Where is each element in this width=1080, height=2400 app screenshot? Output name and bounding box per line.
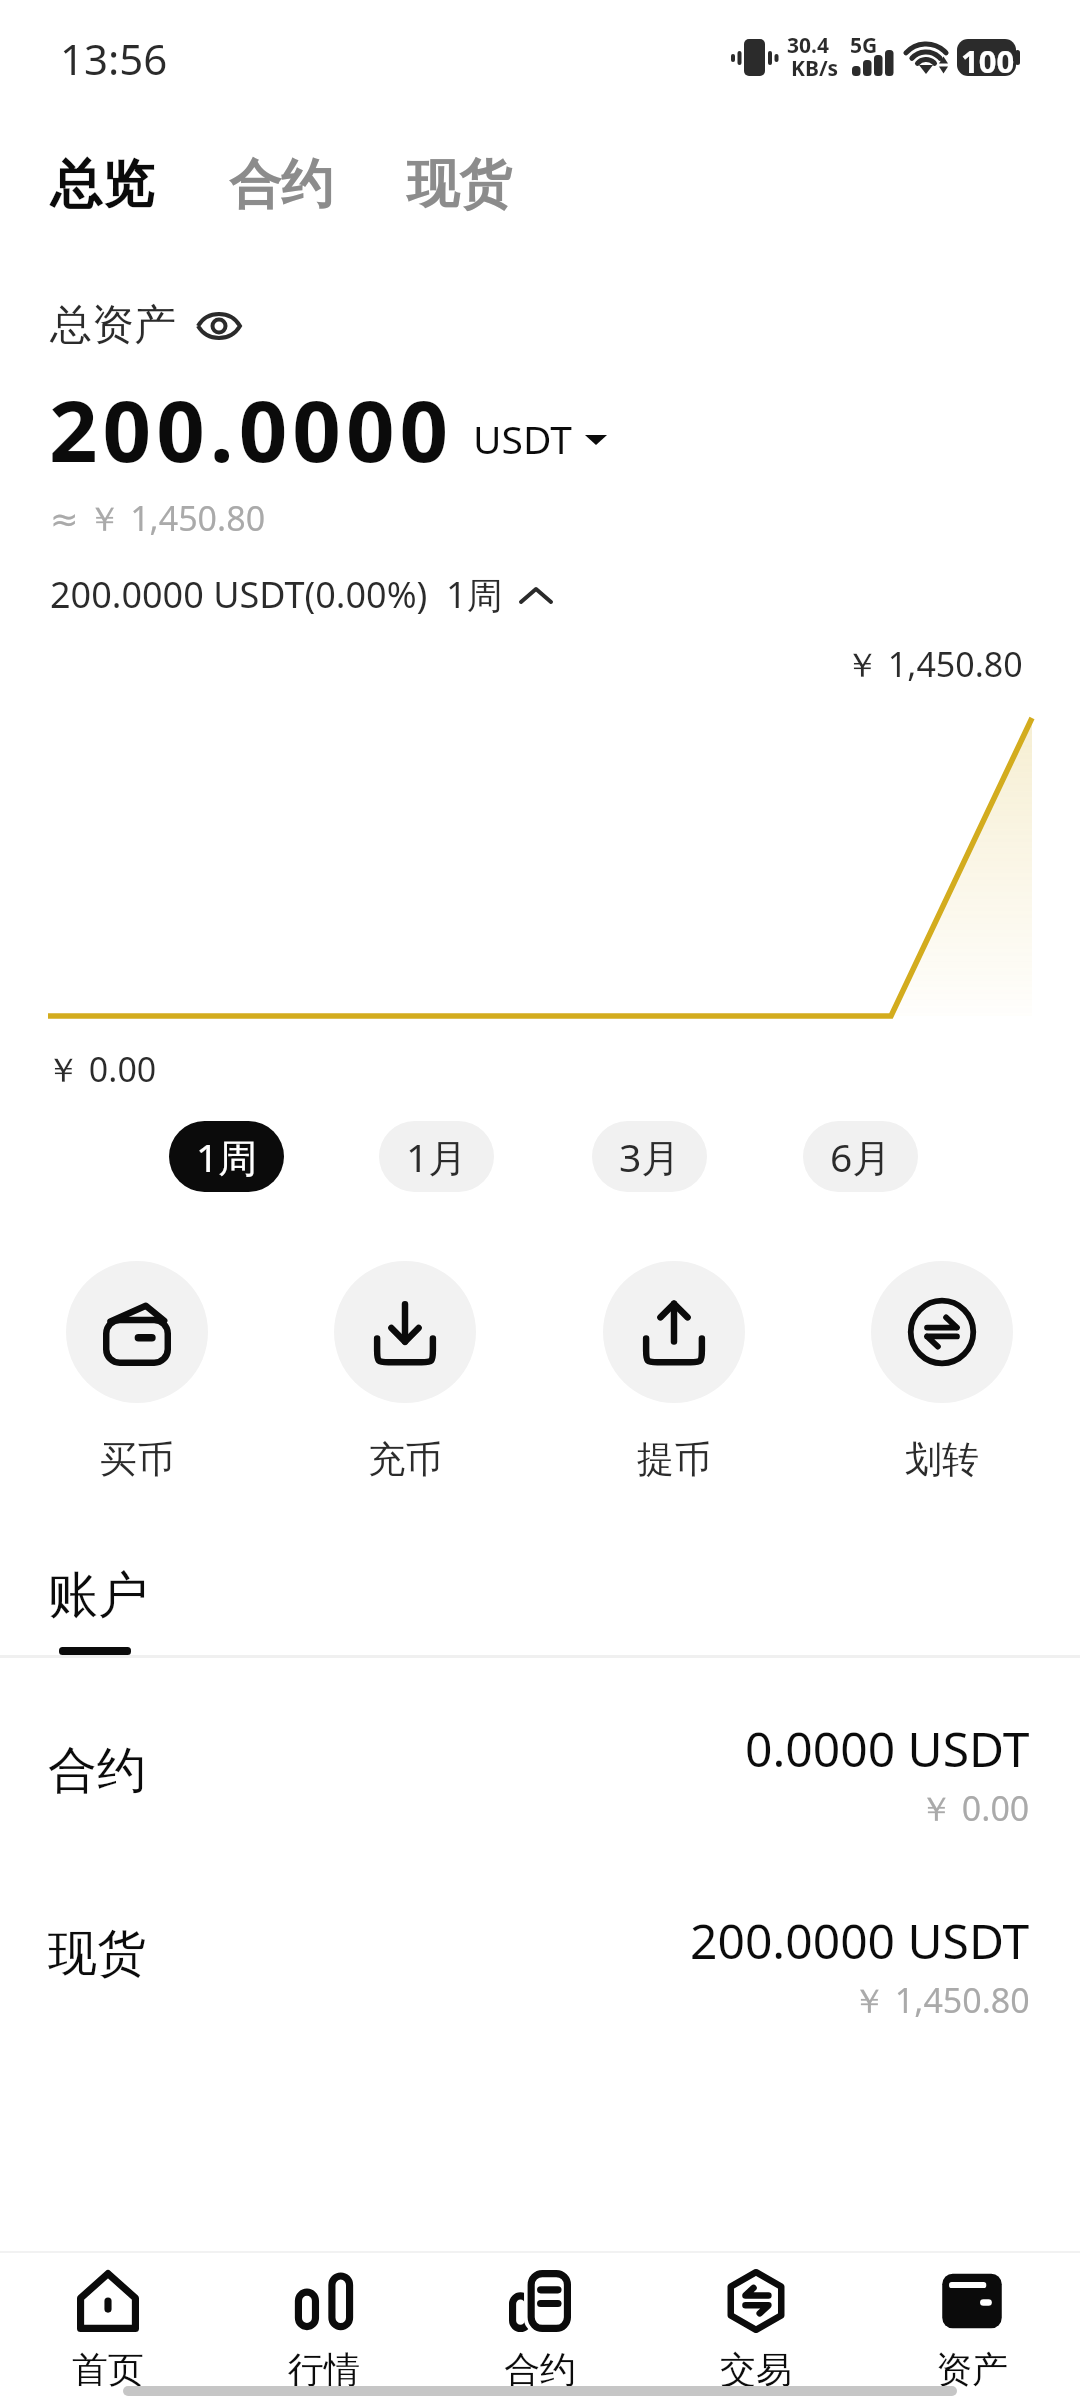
staticText: ￥ 1,450.80 [845, 641, 1023, 687]
button[interactable]: 资产 [864, 2270, 1080, 2400]
staticText: 合约 [229, 152, 333, 218]
button[interactable]: 充币 [334, 1261, 476, 1483]
staticText: 3月 [619, 1130, 681, 1183]
staticText: 现货 [48, 1923, 146, 1985]
staticText: 充币 [368, 1436, 442, 1483]
button[interactable]: 首页 [0, 2270, 216, 2400]
staticText: 总资产 [50, 299, 176, 352]
staticText: 1周 [196, 1130, 258, 1183]
button[interactable]: 行情 [216, 2270, 432, 2400]
button[interactable]: 账户 [48, 1564, 148, 1655]
staticText: USDT [473, 412, 572, 465]
staticText: 13:56 [60, 30, 168, 87]
staticText: 划转 [905, 1436, 979, 1483]
staticText: 200.0000 [49, 371, 454, 487]
staticText: 200.0000 USDT(0.00%) 1周 [50, 570, 503, 619]
button[interactable]: 合约 [0, 1680, 1080, 1850]
button[interactable]: 提币 [603, 1261, 745, 1483]
staticText: 合约 [504, 2347, 576, 2392]
staticText: 总览 [50, 152, 154, 218]
button[interactable]: 3月 [592, 1121, 707, 1192]
staticText: 提币 [637, 1436, 711, 1483]
button[interactable]: 现货 [0, 1863, 1080, 2033]
button[interactable]: 6月 [803, 1121, 918, 1192]
button[interactable]: 合约 [229, 152, 333, 218]
staticText: 200.0000 USDT [690, 1908, 1030, 1973]
staticText: 行情 [288, 2347, 360, 2392]
button[interactable]: 1月 [379, 1121, 494, 1192]
button[interactable]: 划转 [871, 1261, 1013, 1483]
staticText: 交易 [720, 2347, 792, 2392]
staticText: 6月 [830, 1130, 892, 1183]
staticText: 30.4 [787, 31, 829, 60]
staticText: 1月 [406, 1130, 468, 1183]
staticText: ￥ 1,450.80 [852, 1977, 1030, 2023]
button[interactable]: 隐藏总资产 [50, 299, 242, 352]
staticText: 现货 [407, 152, 511, 218]
staticText: 0.0000 USDT [745, 1716, 1030, 1781]
button[interactable]: 买币 [66, 1261, 208, 1483]
staticText: ￥ 0.00 [919, 1785, 1030, 1831]
button[interactable]: 收起收益图表 [50, 570, 553, 619]
button[interactable]: 合约 [432, 2270, 648, 2400]
staticText: KB/s [791, 54, 839, 83]
button[interactable]: 选择计价货币 USDT [473, 412, 607, 465]
staticText: 100 [961, 40, 1015, 82]
staticText: 5G [850, 31, 878, 60]
staticText: 买币 [100, 1436, 174, 1483]
button[interactable]: 总览 [50, 152, 154, 218]
button[interactable]: 1周 [169, 1121, 284, 1192]
staticText: 账户 [48, 1564, 148, 1627]
button[interactable]: 交易 [648, 2270, 864, 2400]
staticText: ≈ ￥ 1,450.80 [50, 495, 266, 541]
staticText: ￥ 0.00 [46, 1046, 157, 1092]
button[interactable]: 现货 [407, 152, 511, 218]
staticText: 资产 [936, 2347, 1008, 2392]
staticText: 首页 [72, 2347, 144, 2392]
staticText: 合约 [48, 1740, 146, 1802]
